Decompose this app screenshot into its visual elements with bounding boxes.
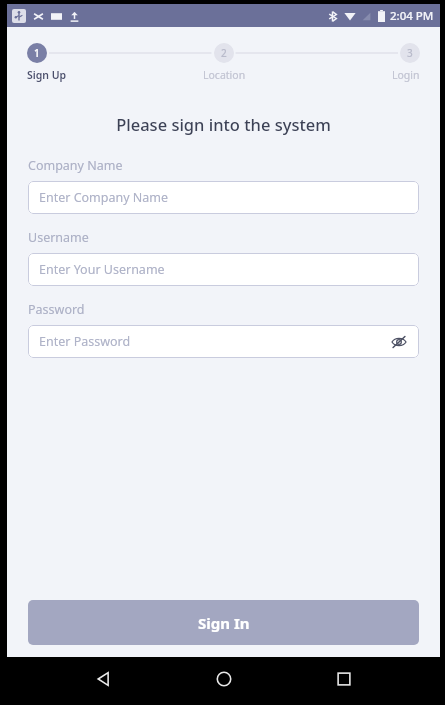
button[interactable]: Sign In [28,600,419,645]
staticText: Login [392,68,420,82]
button[interactable]: 3 [296,37,440,82]
button[interactable]: Enter Password [28,325,419,358]
staticText: 3 [407,46,413,60]
button[interactable]: Recent apps [320,657,368,701]
staticText: Sign Up [27,68,67,82]
button[interactable]: 2 [152,37,296,82]
staticText: Password [28,301,85,318]
staticText: 2 [221,46,227,60]
staticText: 2:04 PM [390,8,434,24]
button[interactable]: Toggle password visibility [389,332,409,352]
button[interactable]: Enter Your Username [28,253,419,286]
button[interactable]: Home [200,657,248,701]
staticText: Enter Your Username [39,261,165,278]
staticText: Company Name [28,157,123,174]
staticText: 1 [34,46,40,60]
staticText: Sign In [198,613,250,633]
staticText: Please sign into the system [7,113,440,135]
button[interactable]: 1 [7,37,152,82]
staticText: Location [203,68,246,82]
staticText: Username [28,229,89,246]
button[interactable]: Back [79,657,127,701]
staticText: Enter Company Name [39,189,169,206]
staticText: Enter Password [39,333,131,350]
button[interactable]: Enter Company Name [28,181,419,214]
